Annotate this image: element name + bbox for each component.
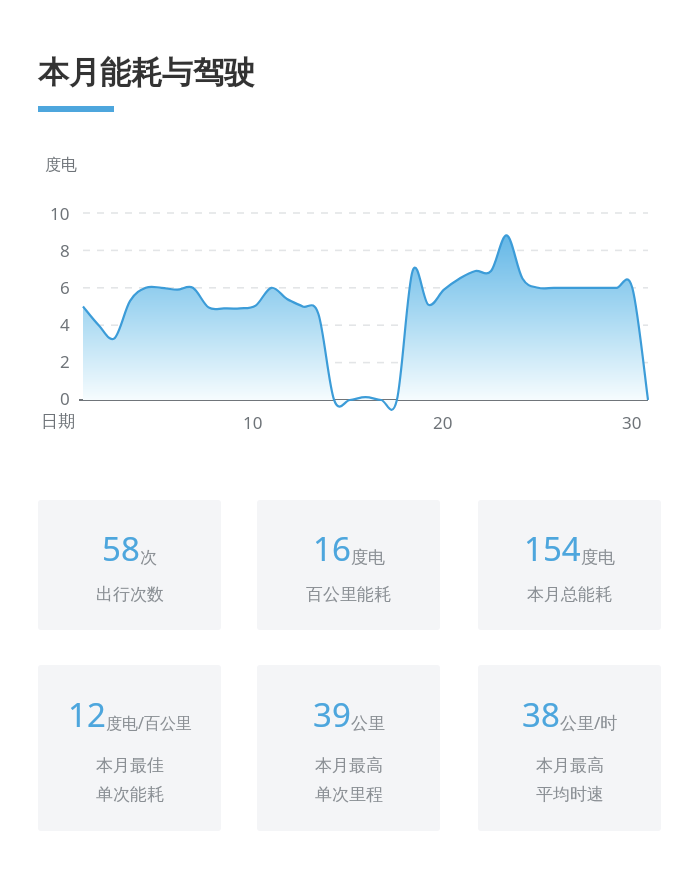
staticText: 本月最高 <box>315 755 383 776</box>
staticText: 本月能耗与驾驶 <box>38 53 255 92</box>
staticText: 30 <box>622 411 642 434</box>
staticText: 12 <box>68 692 106 737</box>
staticText: 154 <box>524 526 581 571</box>
staticText: 公里/时 <box>560 711 618 734</box>
staticText: 出行次数 <box>96 584 164 605</box>
staticText: 日期 <box>41 411 75 432</box>
button[interactable]: 58 <box>38 500 221 630</box>
staticText: 58 <box>102 526 140 571</box>
staticText: 本月最佳 <box>96 755 164 776</box>
staticText: 平均时速 <box>536 784 604 805</box>
staticText: 度电 <box>45 155 77 175</box>
staticText: 本月最高 <box>536 755 604 776</box>
staticText: 度电 <box>351 547 385 568</box>
staticText: 4 <box>60 313 70 336</box>
staticText: 6 <box>60 276 70 299</box>
button[interactable]: 16 <box>257 500 440 630</box>
staticText: 度电/百公里 <box>106 712 192 734</box>
button[interactable]: 12 <box>38 665 221 831</box>
staticText: 20 <box>433 411 453 434</box>
button[interactable]: 154 <box>478 500 661 630</box>
staticText: 8 <box>60 239 70 262</box>
staticText: 39 <box>313 692 351 737</box>
staticText: 38 <box>522 692 560 737</box>
staticText: 单次能耗 <box>96 784 164 805</box>
staticText: 次 <box>140 547 157 568</box>
staticText: 10 <box>50 202 70 225</box>
button[interactable]: 39 <box>257 665 440 831</box>
staticText: 2 <box>60 350 70 373</box>
staticText: 百公里能耗 <box>306 584 391 605</box>
button[interactable]: 38 <box>478 665 661 831</box>
staticText: 16 <box>313 526 351 571</box>
staticText: 0 <box>60 387 70 410</box>
staticText: 度电 <box>581 547 615 568</box>
staticText: 单次里程 <box>315 784 383 805</box>
staticText: 公里 <box>351 713 385 734</box>
staticText: 本月总能耗 <box>527 584 612 605</box>
staticText: 10 <box>243 411 263 434</box>
